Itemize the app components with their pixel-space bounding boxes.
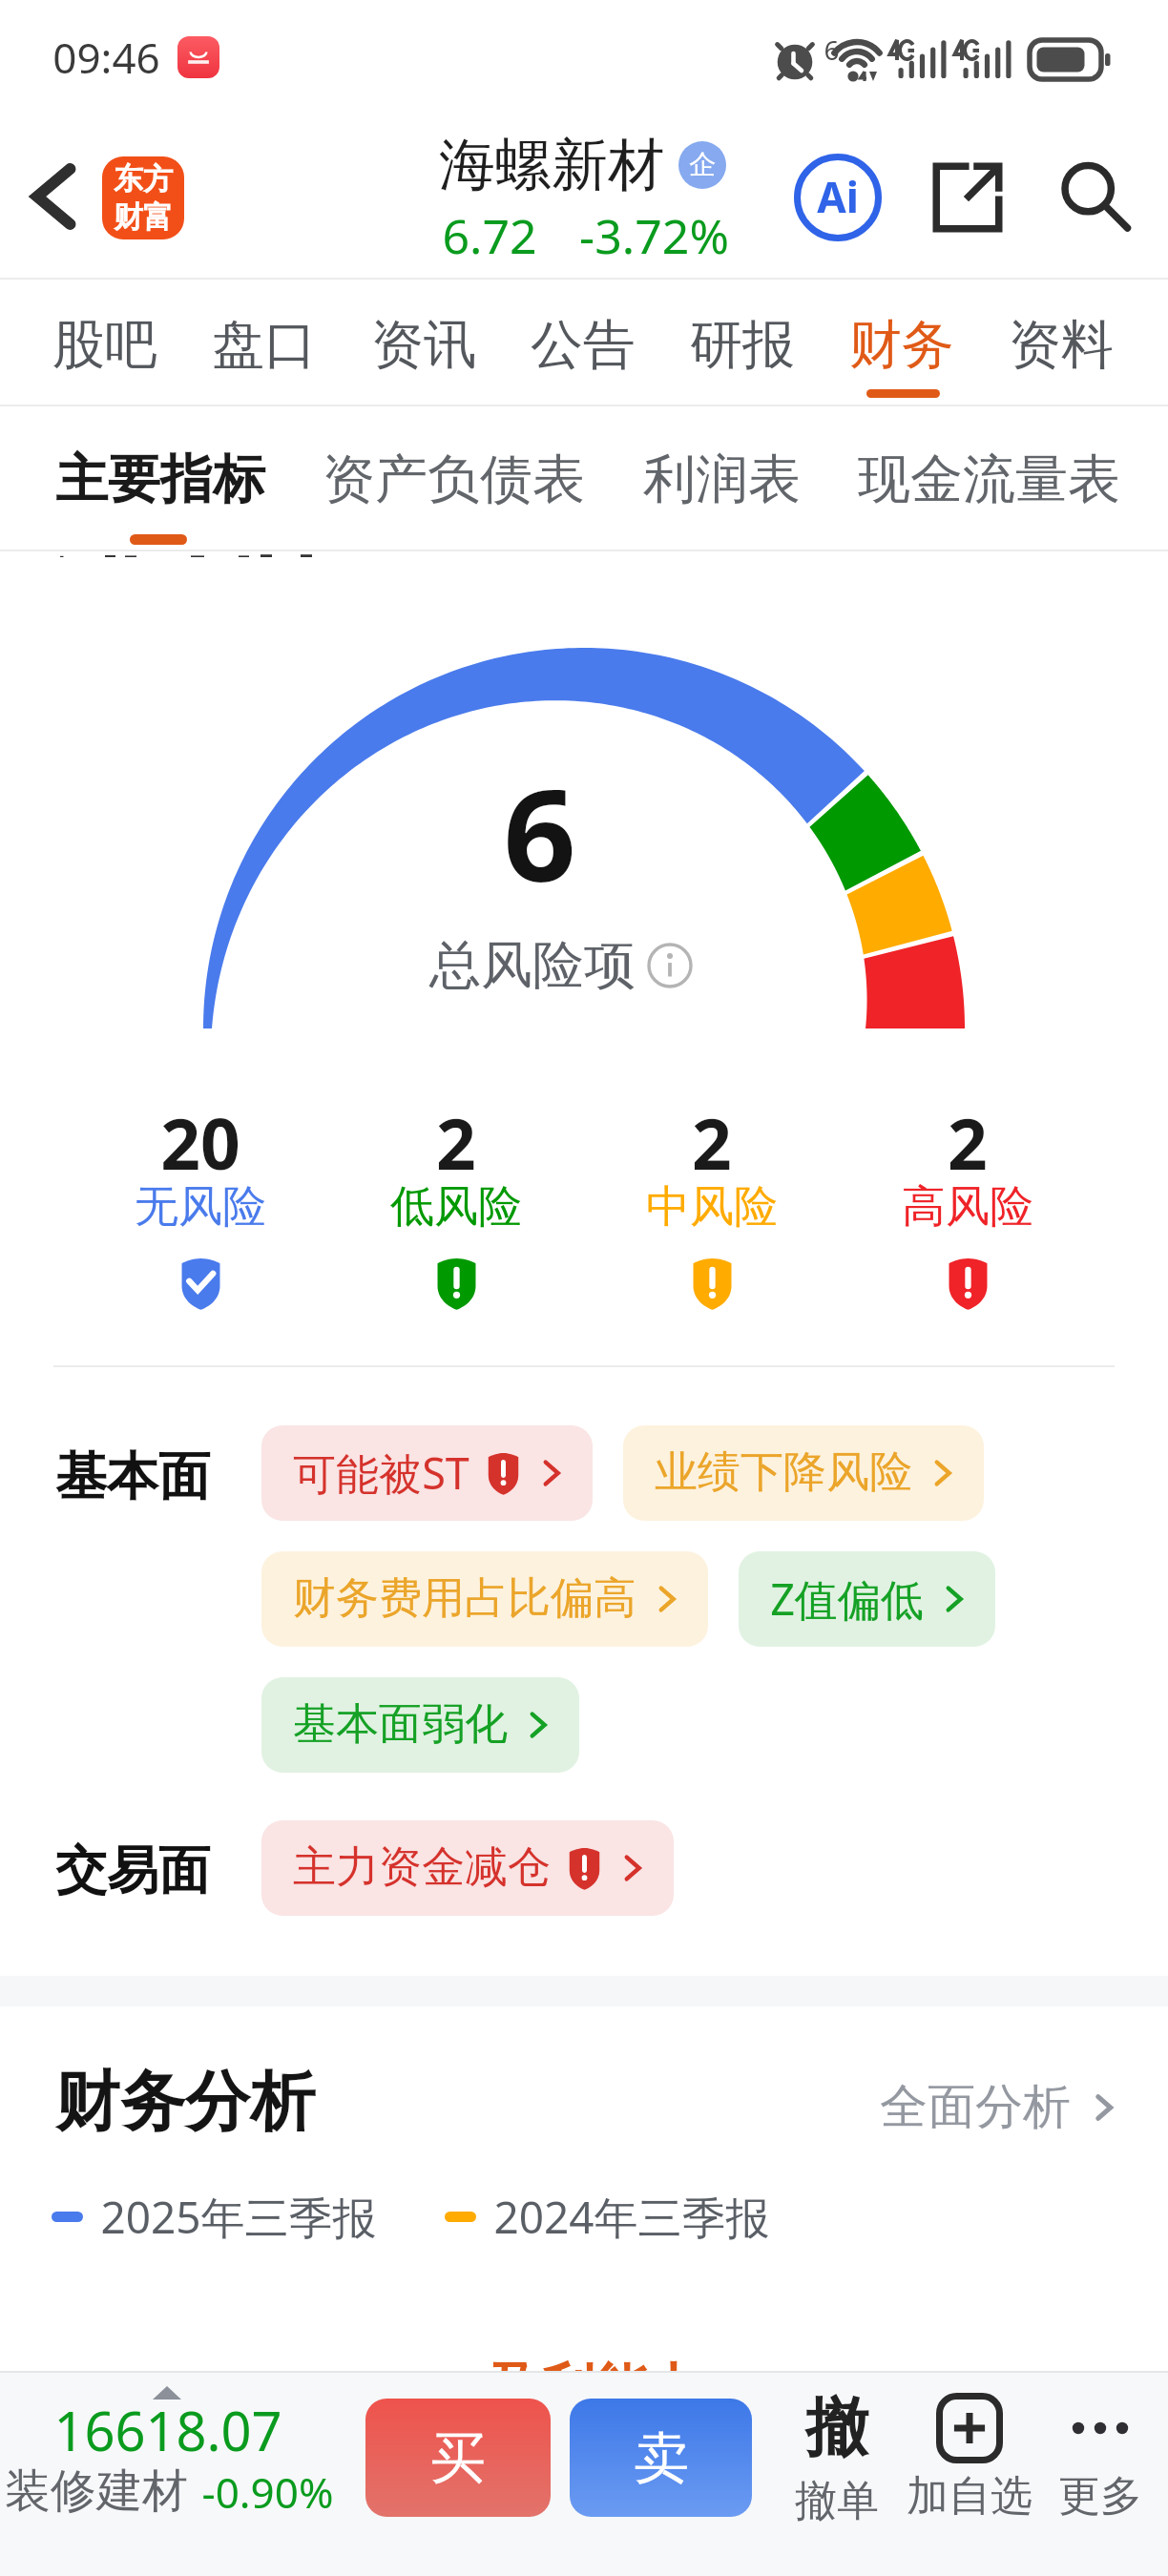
button[interactable]: 东方 [102, 156, 184, 239]
button[interactable]: 主要指标 [55, 406, 265, 511]
button[interactable]: AI assistant [785, 145, 890, 250]
staticText: 海螺新材 [439, 130, 664, 200]
staticText: -3.72% [579, 203, 729, 268]
staticText: 总风险项 [429, 933, 636, 998]
staticText: 2024年三季报 [493, 2187, 770, 2247]
staticText: 资料 [1009, 312, 1114, 378]
button[interactable]: 盘口 [212, 280, 317, 406]
button[interactable]: 卖 [570, 2399, 752, 2517]
staticText: 股吧 [52, 312, 157, 378]
button[interactable]: 基本面弱化 [261, 1677, 579, 1773]
staticText: 业绩下降风险 [655, 1445, 912, 1500]
button[interactable]: Share [922, 152, 1013, 243]
staticText: 基本面 [55, 1444, 210, 1509]
staticText: 2025年三季报 [100, 2187, 377, 2247]
button[interactable]: Back [7, 151, 98, 242]
staticText: 撤单 [795, 2475, 879, 2527]
button[interactable]: Risk info [647, 943, 693, 988]
staticText: -0.90% [201, 2463, 334, 2521]
button[interactable]: 可能被ST [261, 1425, 593, 1521]
staticText: 现金流量表 [858, 447, 1120, 512]
staticText: 6 [824, 31, 840, 68]
staticText: 6.72 [442, 203, 537, 268]
staticText: 装修建材 [5, 2462, 188, 2520]
button[interactable]: 财务费用占比偏高 [261, 1551, 708, 1647]
staticText: Ai [817, 168, 859, 225]
button[interactable]: 2 [840, 1097, 1095, 1326]
staticText: 企 [689, 148, 716, 181]
staticText: 2 [948, 1095, 988, 1190]
staticText: 买 [430, 2423, 486, 2493]
staticText: 加自选 [907, 2470, 1032, 2523]
staticText: 09:46 [52, 29, 160, 86]
staticText: 资产负债表 [323, 447, 585, 512]
staticText: 全面分析 [880, 2077, 1071, 2137]
button[interactable]: 资料 [1009, 280, 1114, 406]
button[interactable]: 财务 [849, 280, 954, 406]
staticText: 中风险 [646, 1179, 778, 1235]
staticText: 盘口 [212, 312, 317, 378]
staticText: 财富 [114, 198, 173, 236]
staticText: Z值偏低 [770, 1569, 924, 1628]
button[interactable]: 16618.07 [0, 2390, 344, 2552]
button[interactable]: 更多 [1029, 2388, 1168, 2523]
button[interactable]: 买 [365, 2399, 551, 2517]
button[interactable]: 研报 [690, 280, 795, 406]
button[interactable]: 全面分析 [880, 2077, 1116, 2137]
button[interactable]: 股吧 [52, 280, 157, 406]
button[interactable]: 资产负债表 [323, 406, 585, 511]
staticText: 公告 [531, 312, 636, 378]
button[interactable]: 公告 [531, 280, 636, 406]
button[interactable]: 撤 [765, 2388, 908, 2527]
staticText: 财务费用占比偏高 [293, 1571, 636, 1626]
button[interactable]: Search [1050, 152, 1141, 243]
staticText: 低风险 [390, 1179, 522, 1235]
button[interactable]: 现金流量表 [858, 406, 1120, 511]
staticText: 财务 [849, 312, 954, 378]
staticText: 研报 [690, 312, 795, 378]
button[interactable]: 业绩下降风险 [623, 1425, 984, 1521]
staticText: 基本面弱化 [293, 1697, 508, 1752]
staticText: 财务分析 [55, 2062, 315, 2144]
staticText: 更多 [1058, 2470, 1142, 2523]
button[interactable]: 2 [328, 1097, 584, 1326]
staticText: 6 [503, 746, 576, 919]
staticText: 资讯 [371, 312, 476, 378]
button[interactable]: 20 [73, 1097, 328, 1326]
staticText: 撤 [805, 2388, 868, 2467]
staticText: 交易面 [55, 1839, 210, 1903]
staticText: 16618.07 [53, 2394, 282, 2466]
staticText: 2 [436, 1095, 476, 1190]
staticText: 无风险 [135, 1179, 266, 1235]
staticText: 主要指标 [55, 447, 265, 512]
staticText: 20 [160, 1095, 240, 1190]
staticText: 高风险 [902, 1179, 1033, 1235]
staticText: 主力资金减仓 [293, 1840, 551, 1895]
button[interactable]: 2 [584, 1097, 840, 1326]
staticText: 2 [692, 1095, 732, 1190]
staticText: 利润表 [643, 447, 801, 512]
button[interactable]: 利润表 [643, 406, 801, 511]
staticText: 东方 [114, 160, 173, 197]
staticText: 卖 [634, 2423, 689, 2493]
button[interactable]: 加自选 [898, 2388, 1041, 2523]
staticText: 可能被ST [293, 1444, 469, 1502]
button[interactable]: Z值偏低 [739, 1551, 995, 1647]
staticText: 盈利能力 [488, 2356, 701, 2423]
button[interactable]: 主力资金减仓 [261, 1820, 674, 1916]
button[interactable]: 资讯 [371, 280, 476, 406]
